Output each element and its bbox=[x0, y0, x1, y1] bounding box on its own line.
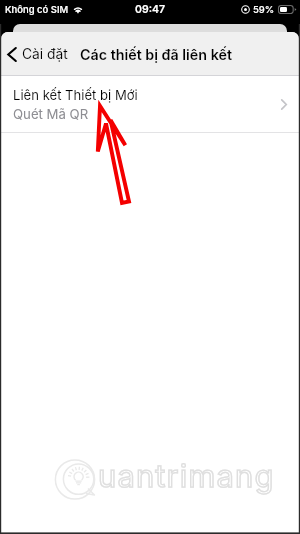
button[interactable]: Cài đặt bbox=[1, 40, 76, 69]
staticText: Không có SIM bbox=[5, 4, 69, 15]
staticText: Quét Mã QR bbox=[13, 106, 89, 122]
staticText: Liên kết Thiết bị Mới bbox=[13, 87, 138, 103]
staticText: Các thiết bị đã liên kết bbox=[80, 46, 232, 63]
staticText: 09:47 bbox=[135, 3, 166, 16]
button[interactable]: Liên kết Thiết bị Mới bbox=[1, 76, 299, 133]
staticText: uantrimang bbox=[98, 457, 275, 495]
staticText: 59% bbox=[253, 4, 275, 15]
staticText: Cài đặt bbox=[22, 46, 68, 63]
